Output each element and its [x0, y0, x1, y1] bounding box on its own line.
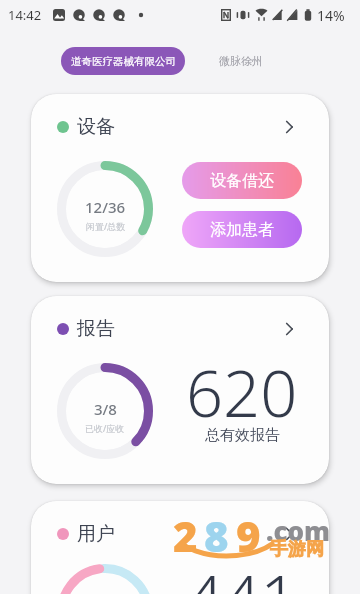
staticText: 12/36	[85, 197, 126, 217]
button[interactable]: More	[281, 320, 299, 338]
staticText: 设备借还	[210, 171, 274, 191]
staticText: .com	[266, 513, 331, 548]
staticText: 14:42	[8, 6, 42, 24]
button[interactable]: 设备	[31, 94, 329, 282]
staticText: 9	[236, 507, 261, 564]
staticText: 微脉徐州	[219, 54, 263, 68]
staticText: 设备	[77, 115, 115, 139]
staticText: 8	[204, 507, 229, 564]
staticText: 用户	[77, 522, 115, 546]
button[interactable]: 报告	[31, 296, 329, 484]
button[interactable]: 用户	[31, 501, 329, 594]
button[interactable]: More	[281, 525, 299, 543]
staticText: 2	[173, 507, 198, 564]
staticText: 14%	[317, 6, 345, 25]
button[interactable]: More	[281, 118, 299, 136]
staticText: 道奇医疗器械有限公司	[71, 55, 176, 68]
staticText: 报告	[77, 317, 115, 341]
staticText: 3/8	[94, 399, 117, 419]
button[interactable]: 添加患者	[182, 211, 302, 248]
staticText: 总有效报告	[205, 426, 280, 445]
staticText: 已收/应收	[85, 422, 125, 434]
staticText: 620	[186, 348, 298, 437]
staticText: 闲置/总数	[86, 220, 126, 232]
button[interactable]: 设备借还	[182, 162, 302, 199]
staticText: 添加患者	[210, 220, 274, 240]
staticText: 手游网	[270, 538, 324, 561]
staticText: 441	[186, 553, 298, 594]
button[interactable]: 微脉徐州	[209, 47, 273, 75]
button[interactable]: 道奇医疗器械有限公司	[61, 47, 185, 75]
